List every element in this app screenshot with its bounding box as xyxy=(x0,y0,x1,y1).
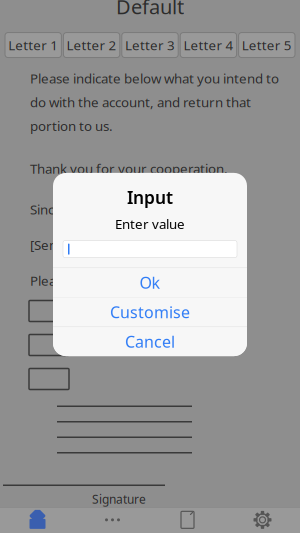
staticText: [Sender] xyxy=(30,236,83,254)
button[interactable]: Letter 1 xyxy=(4,33,62,58)
button[interactable]: Letter 3 xyxy=(121,33,179,58)
staticText: Ok xyxy=(139,272,160,293)
staticText: Default xyxy=(116,0,184,20)
button[interactable]: Account xyxy=(225,507,300,533)
staticText: Letter 4 xyxy=(183,36,233,54)
button[interactable]: Customise xyxy=(53,298,247,327)
staticText: Enter value xyxy=(115,215,185,233)
button[interactable]: Files xyxy=(150,507,225,533)
staticText: Customise xyxy=(110,301,190,323)
staticText: Letter 3 xyxy=(125,36,175,54)
staticText: do with the account, and return that xyxy=(30,93,251,111)
button[interactable]: Letter 2 xyxy=(62,33,121,58)
button[interactable]: Ok xyxy=(53,268,247,297)
button[interactable]: Letter 4 xyxy=(179,33,238,58)
button[interactable]: Home xyxy=(0,507,75,533)
staticText: Input xyxy=(127,186,173,209)
button[interactable]: Menu xyxy=(75,507,150,533)
button[interactable]: Letter 5 xyxy=(238,33,296,58)
staticText: Sincerely, xyxy=(30,200,88,218)
button[interactable]: Cancel xyxy=(53,327,247,356)
staticText: Letter 1 xyxy=(8,36,58,54)
staticText: Please tick one: xyxy=(30,272,125,289)
staticText: Letter 2 xyxy=(67,36,117,54)
staticText: portion to us. xyxy=(30,117,113,135)
staticText: Letter 5 xyxy=(242,36,292,54)
staticText: Thank you for your cooperation. xyxy=(30,160,228,177)
staticText: Please indicate below what you intend to xyxy=(30,70,279,87)
staticText: Signature xyxy=(92,491,146,507)
staticText: Cancel xyxy=(125,331,175,352)
